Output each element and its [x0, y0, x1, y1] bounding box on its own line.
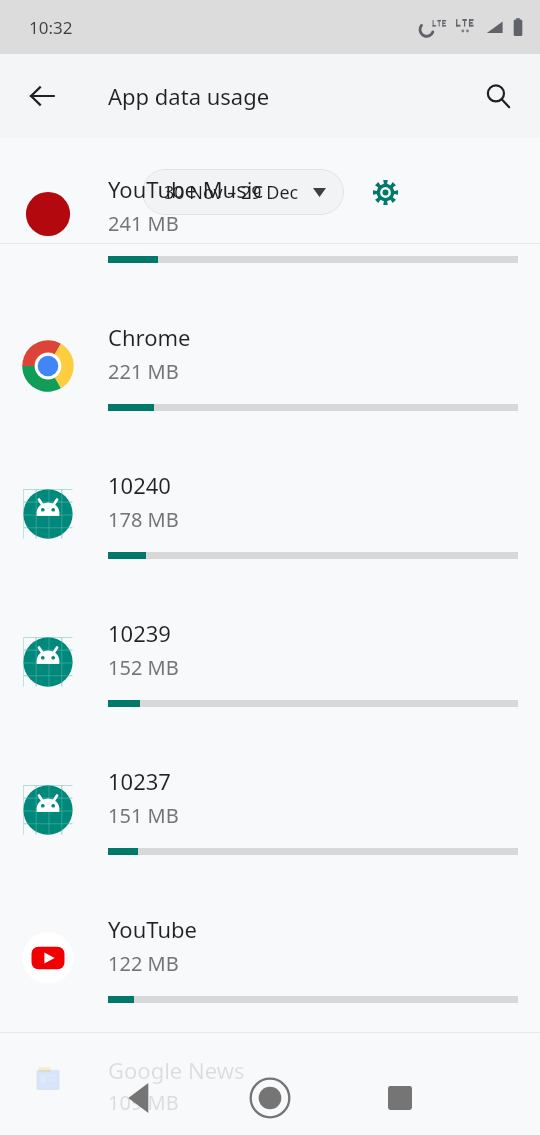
button[interactable]: 10240 [0, 440, 540, 588]
staticText: 241 MB [108, 210, 179, 237]
staticText: Google News [108, 1055, 245, 1085]
staticText: 151 MB [108, 802, 179, 829]
staticText: YouTube [108, 914, 197, 944]
staticText: Chrome [108, 322, 191, 352]
staticText: 221 MB [108, 358, 179, 385]
staticText: 10240 [108, 470, 171, 500]
button[interactable]: 30 Nov – 29 Dec [142, 169, 344, 215]
button[interactable]: Search [470, 68, 526, 124]
staticText: 10239 [108, 618, 171, 648]
button[interactable]: Back [112, 1070, 168, 1126]
button[interactable]: 10239 [0, 588, 540, 736]
staticText: 10:32 [29, 16, 73, 39]
staticText: 10237 [108, 766, 171, 796]
button[interactable]: YouTube Music [0, 244, 540, 292]
button[interactable]: 10237 [0, 736, 540, 884]
staticText: 178 MB [108, 506, 179, 533]
staticText: YouTube Music [108, 174, 263, 204]
staticText: 109 MB [108, 1089, 179, 1116]
staticText: 30 Nov – 29 Dec [164, 180, 299, 205]
staticText: 122 MB [108, 950, 179, 977]
button[interactable]: Recent apps [372, 1070, 428, 1126]
staticText: App data usage [108, 81, 270, 111]
staticText: 152 MB [108, 654, 179, 681]
button[interactable]: Data usage settings [362, 169, 408, 215]
button[interactable]: YouTube [0, 884, 540, 1032]
button[interactable]: Home [242, 1070, 298, 1126]
button[interactable]: Chrome [0, 292, 540, 440]
button[interactable]: Back [14, 68, 70, 124]
